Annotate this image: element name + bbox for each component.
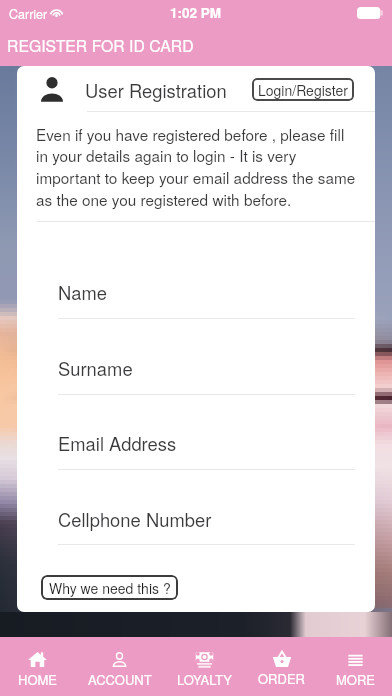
other: Home: [28, 650, 47, 669]
other: Profile: [39, 76, 65, 102]
staticText: REGISTER FOR ID CARD: [7, 34, 194, 57]
button[interactable]: Login/Register: [252, 78, 354, 101]
staticText: 1:02 PM: [170, 3, 222, 22]
other: Order: [272, 649, 292, 669]
staticText: Login/Register: [258, 80, 348, 100]
button[interactable]: Why we need this ?: [41, 575, 178, 600]
button[interactable]: Loyalty: [164, 637, 244, 696]
staticText: Cellphone Number: [58, 506, 212, 532]
staticText: User Registration: [85, 77, 227, 103]
staticText: Surname: [58, 355, 133, 381]
other: Loyalty: [195, 650, 214, 669]
other: Account: [111, 651, 128, 668]
staticText: Carrier: [9, 5, 48, 23]
button[interactable]: Order: [244, 637, 319, 696]
staticText: Even if you have registered before , ple…: [36, 123, 358, 211]
staticText: HOME: [18, 670, 58, 689]
staticText: MORE: [336, 670, 376, 689]
button[interactable]: Account: [75, 637, 164, 696]
staticText: Name: [58, 279, 107, 305]
staticText: ACCOUNT: [88, 670, 152, 689]
button[interactable]: Home: [0, 637, 75, 696]
staticText: Why we need this ?: [49, 578, 171, 598]
staticText: Email Address: [58, 430, 177, 456]
button[interactable]: More: [319, 637, 392, 696]
staticText: ORDER: [258, 669, 305, 688]
staticText: LOYALTY: [177, 670, 232, 689]
other: More: [347, 651, 364, 668]
